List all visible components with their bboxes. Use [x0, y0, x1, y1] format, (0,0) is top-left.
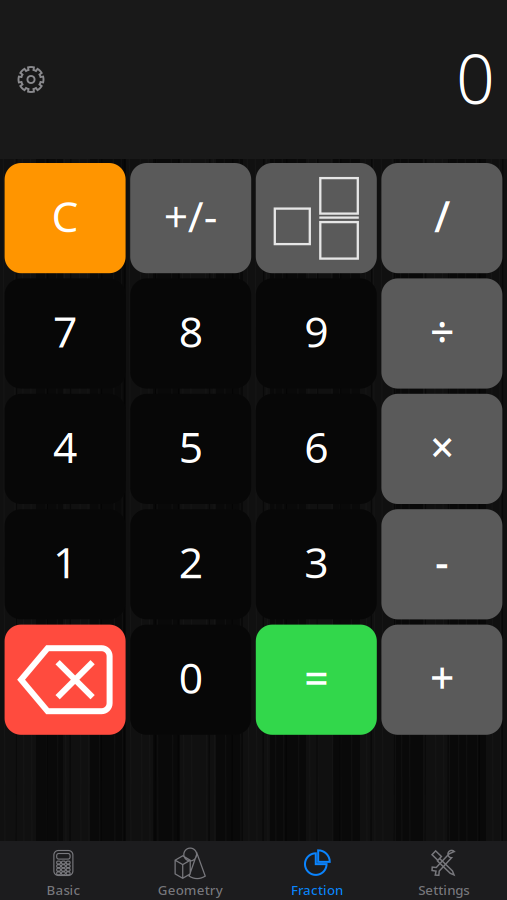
button[interactable]: + [381, 625, 502, 735]
button[interactable]: Geometry [127, 841, 254, 900]
staticText: × [430, 418, 454, 475]
staticText: 1 [53, 533, 77, 590]
button[interactable]: 3 [256, 509, 377, 619]
staticText: 0 [179, 649, 203, 706]
staticText: 7 [53, 303, 77, 359]
staticText: / [434, 187, 450, 244]
button[interactable]: 7 [5, 278, 126, 389]
button[interactable]: 2 [130, 509, 251, 619]
button[interactable]: / [381, 163, 502, 273]
button[interactable]: 5 [130, 394, 251, 504]
button[interactable]: ÷ [381, 278, 502, 389]
staticText: ÷ [430, 303, 454, 359]
button[interactable]: C [5, 163, 126, 273]
staticText: 0 [456, 32, 495, 123]
staticText: Geometry [158, 881, 223, 899]
button[interactable]: Mixed fraction [256, 163, 377, 273]
button[interactable]: Settings [380, 841, 507, 900]
staticText: Fraction [291, 881, 343, 899]
button[interactable]: 8 [130, 278, 251, 389]
button[interactable]: Delete [5, 625, 126, 735]
staticText: + [430, 649, 454, 706]
button[interactable]: × [381, 394, 502, 504]
button[interactable]: 0 [130, 625, 251, 735]
button[interactable]: Settings [8, 56, 54, 102]
staticText: 6 [304, 418, 328, 475]
button[interactable]: Fraction [253, 841, 380, 900]
staticText: 4 [53, 418, 77, 475]
staticText: Basic [46, 881, 80, 899]
staticText: 2 [179, 533, 203, 590]
staticText: 8 [179, 303, 203, 359]
button[interactable]: - [381, 509, 502, 619]
button[interactable]: 9 [256, 278, 377, 389]
button[interactable]: 1 [5, 509, 126, 619]
staticText: C [52, 187, 79, 244]
staticText: 3 [304, 533, 328, 590]
staticText: +/- [164, 187, 218, 244]
staticText: - [435, 533, 449, 590]
button[interactable]: Basic [0, 841, 127, 900]
staticText: 9 [304, 303, 328, 359]
staticText: = [304, 649, 328, 706]
staticText: 5 [179, 418, 203, 475]
button[interactable]: 6 [256, 394, 377, 504]
button[interactable]: +/- [130, 163, 251, 273]
button[interactable]: 4 [5, 394, 126, 504]
staticText: Settings [418, 881, 469, 899]
button[interactable]: = [256, 625, 377, 735]
